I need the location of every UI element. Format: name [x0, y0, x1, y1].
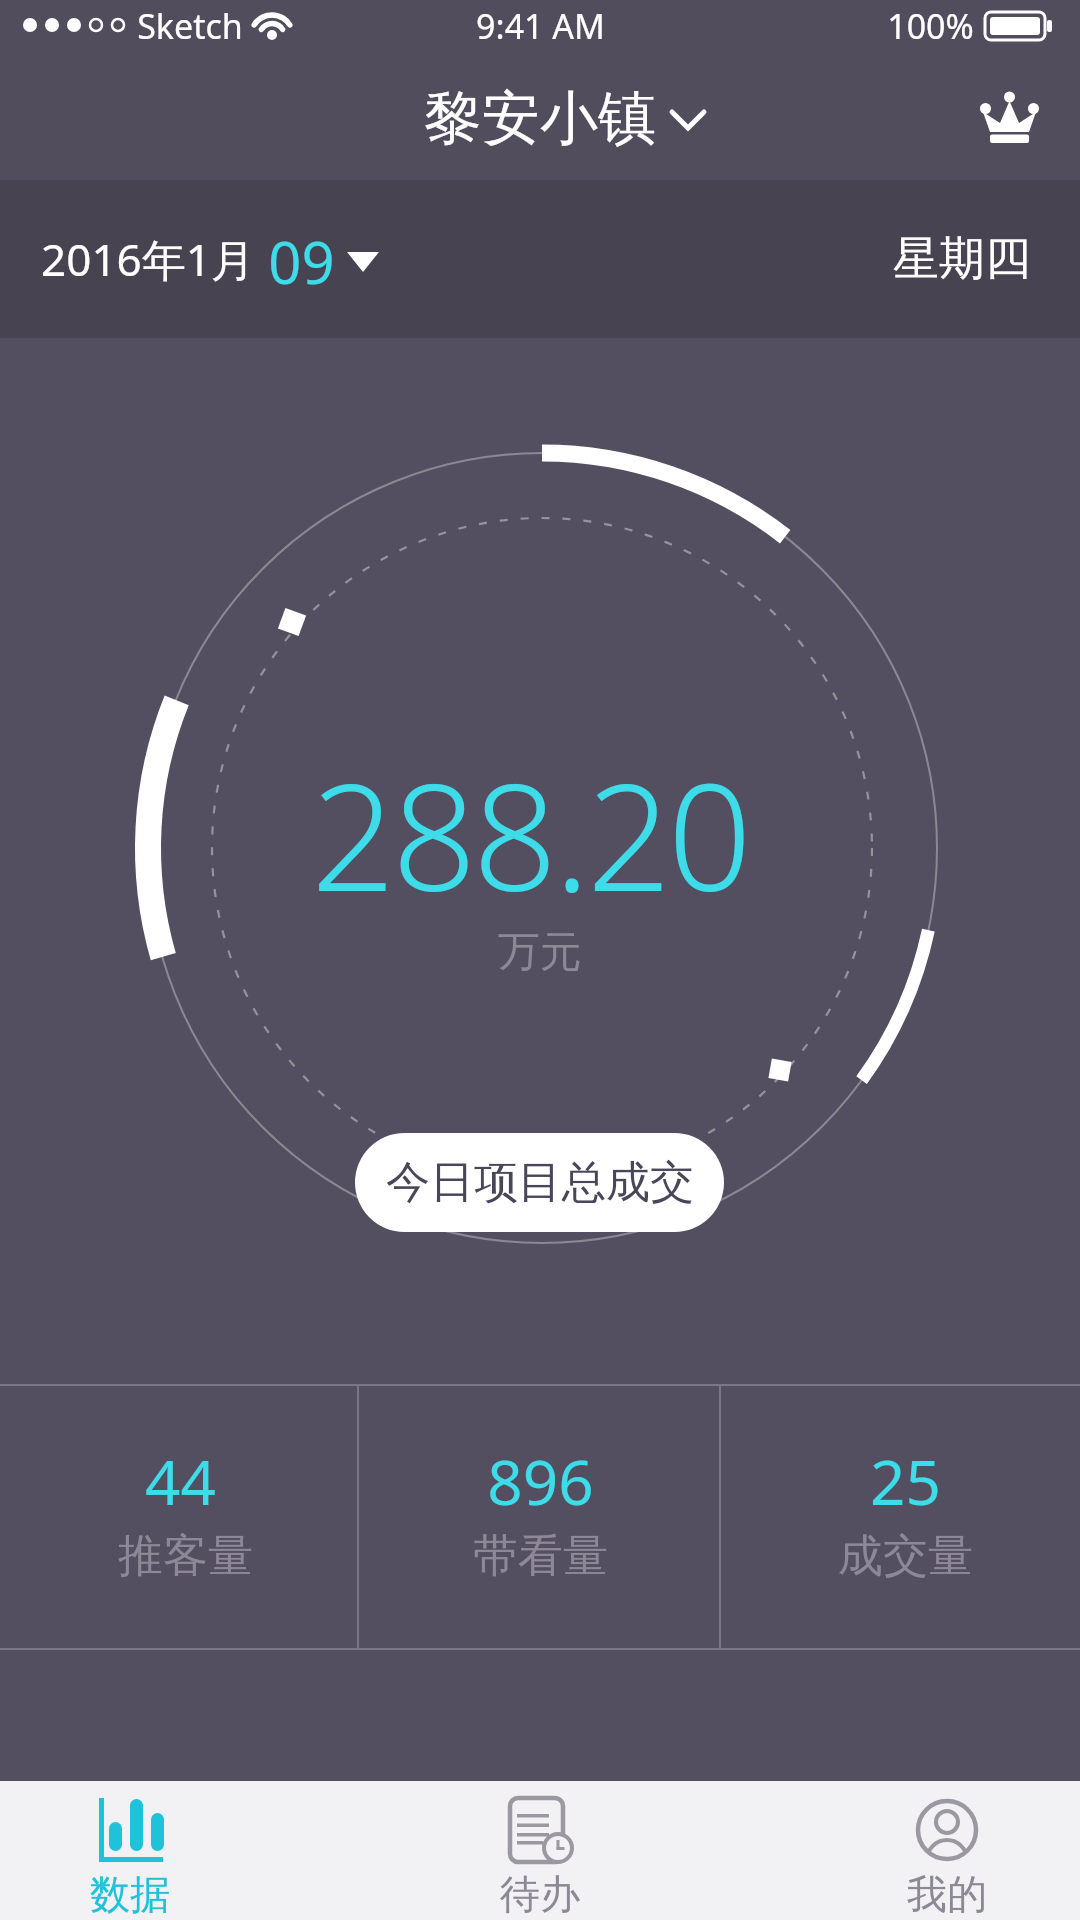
button[interactable] — [390, 85, 720, 155]
staticText: 成交量 — [838, 1528, 973, 1585]
staticText: Sketch — [137, 3, 243, 47]
staticText: 288.20 — [311, 734, 749, 904]
staticText: 待办 — [500, 1869, 580, 1919]
staticText: 100% — [887, 3, 974, 47]
staticText: 9:41 AM — [476, 3, 605, 47]
button[interactable] — [721, 1386, 1080, 1648]
staticText: 896 — [487, 1439, 594, 1519]
staticText: 数据 — [90, 1869, 170, 1919]
button[interactable] — [359, 1386, 717, 1648]
staticText: 星期四 — [893, 230, 1031, 288]
staticText: 09 — [268, 222, 335, 292]
button[interactable] — [0, 180, 1080, 338]
button[interactable]: 今日项目总成交 — [355, 1133, 724, 1232]
staticText: 25 — [870, 1439, 941, 1519]
staticText: 今日项目总成交 — [386, 1155, 694, 1210]
staticText: 我的 — [907, 1869, 987, 1919]
button[interactable] — [0, 1386, 357, 1648]
button[interactable] — [975, 85, 1043, 149]
staticText: 带看量 — [473, 1528, 608, 1585]
button[interactable] — [860, 1781, 1040, 1920]
staticText: 黎安小镇 — [424, 82, 656, 155]
button[interactable] — [450, 1781, 630, 1920]
button[interactable] — [40, 1781, 220, 1920]
staticText: 44 — [145, 1439, 216, 1519]
staticText: 推客量 — [118, 1528, 253, 1585]
staticText: 万元 — [498, 926, 582, 979]
staticText: 2016年1月 — [41, 229, 255, 289]
